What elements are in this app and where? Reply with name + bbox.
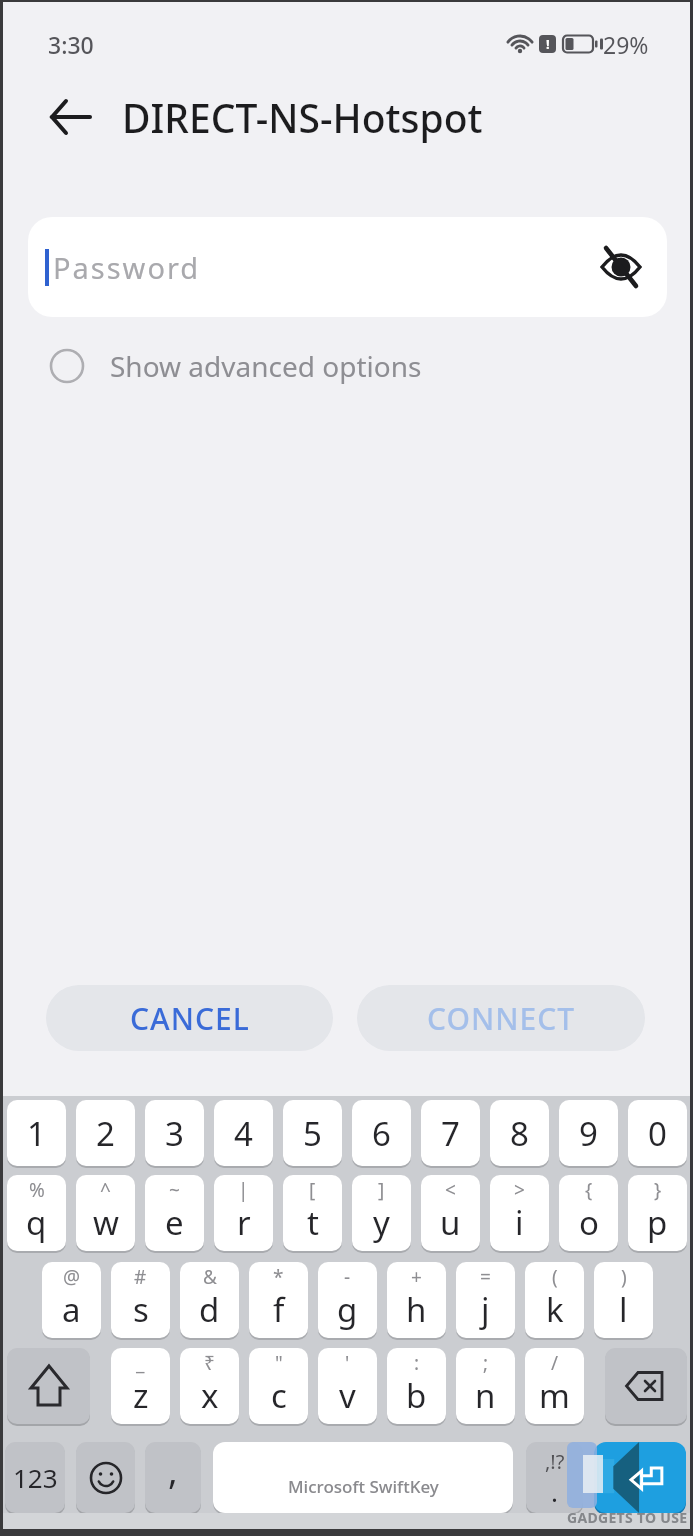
button[interactable]: ₹ — [180, 1348, 239, 1424]
staticText: Password — [53, 248, 201, 287]
staticText: z — [133, 1373, 149, 1418]
staticText: ^ — [100, 1177, 111, 1203]
button[interactable]: 5 — [283, 1100, 342, 1166]
staticText: s — [133, 1287, 149, 1332]
button[interactable]: } — [628, 1175, 687, 1251]
staticText: Show advanced options — [110, 347, 422, 385]
button[interactable]: 8 — [490, 1100, 549, 1166]
button[interactable]: Microsoft SwiftKey — [213, 1442, 513, 1513]
button[interactable]: / — [525, 1348, 584, 1424]
staticText: " — [275, 1350, 283, 1376]
staticText: + — [411, 1264, 422, 1290]
staticText: ₹ — [204, 1350, 215, 1376]
button[interactable]: CANCEL — [46, 985, 333, 1051]
staticText: @ — [63, 1264, 81, 1290]
button[interactable] — [594, 1442, 686, 1513]
button[interactable]: # — [111, 1262, 170, 1338]
staticText: q — [26, 1200, 47, 1245]
staticText: x — [201, 1373, 219, 1418]
button[interactable]: 0 — [628, 1100, 687, 1166]
button[interactable]: 7 — [421, 1100, 480, 1166]
staticText: a — [62, 1287, 81, 1332]
button[interactable] — [48, 95, 92, 139]
button[interactable]: _ — [111, 1348, 170, 1424]
staticText: i — [515, 1200, 524, 1245]
staticText: 8 — [510, 1111, 529, 1156]
staticText: m — [539, 1373, 570, 1418]
button[interactable]: = — [456, 1262, 515, 1338]
button[interactable] — [605, 1348, 687, 1424]
staticText: ] — [378, 1177, 385, 1203]
staticText: ( — [552, 1264, 558, 1290]
button[interactable]: 9 — [559, 1100, 618, 1166]
button[interactable]: ,!? — [526, 1442, 583, 1513]
button[interactable]: " — [249, 1348, 308, 1424]
button[interactable]: { — [559, 1175, 618, 1251]
staticText: ~ — [169, 1177, 180, 1203]
button[interactable]: , — [145, 1442, 201, 1513]
staticText: 0 — [648, 1111, 667, 1156]
button[interactable]: | — [214, 1175, 273, 1251]
button[interactable]: ~ — [145, 1175, 204, 1251]
staticText: [ — [309, 1177, 316, 1203]
button[interactable]: Password — [28, 217, 667, 317]
button[interactable]: 2 — [76, 1100, 135, 1166]
staticText: 3:30 — [48, 29, 94, 60]
button[interactable]: < — [421, 1175, 480, 1251]
button[interactable]: ; — [456, 1348, 515, 1424]
staticText: - — [344, 1264, 351, 1290]
button[interactable]: % — [7, 1175, 66, 1251]
staticText: u — [440, 1200, 461, 1245]
staticText: ! — [546, 35, 550, 53]
button[interactable]: 1 — [7, 1100, 66, 1166]
staticText: k — [546, 1287, 564, 1332]
staticText: / — [551, 1350, 559, 1376]
staticText: 7 — [441, 1111, 460, 1156]
button[interactable]: @ — [42, 1262, 101, 1338]
button[interactable]: [ — [283, 1175, 342, 1251]
button[interactable]: CONNECT — [357, 985, 645, 1051]
staticText: 5 — [303, 1111, 322, 1156]
button[interactable]: 6 — [352, 1100, 411, 1166]
button[interactable]: * — [249, 1262, 308, 1338]
button[interactable]: ' — [318, 1348, 377, 1424]
staticText: 29% — [603, 29, 649, 60]
staticText: CONNECT — [427, 998, 576, 1039]
staticText: DIRECT-NS-Hotspot — [122, 91, 483, 144]
staticText: . — [551, 1474, 558, 1509]
button[interactable]: ) — [594, 1262, 653, 1338]
button[interactable] — [76, 1442, 135, 1513]
button[interactable]: ( — [525, 1262, 584, 1338]
staticText: ; — [483, 1350, 489, 1376]
button[interactable]: 3 — [145, 1100, 204, 1166]
staticText: f — [273, 1287, 285, 1332]
staticText: 2 — [96, 1111, 115, 1156]
staticText: Microsoft SwiftKey — [288, 1475, 439, 1498]
button[interactable]: - — [318, 1262, 377, 1338]
button[interactable]: ] — [352, 1175, 411, 1251]
button[interactable]: Show advanced options — [49, 346, 422, 386]
staticText: p — [647, 1200, 668, 1245]
staticText: d — [199, 1287, 220, 1332]
staticText: ,!? — [545, 1448, 565, 1475]
staticText: # — [134, 1264, 147, 1290]
staticText: g — [337, 1287, 358, 1332]
staticText: * — [273, 1264, 284, 1290]
button[interactable]: 123 — [5, 1442, 65, 1513]
staticText: 9 — [579, 1111, 598, 1156]
staticText: 3 — [165, 1111, 184, 1156]
staticText: % — [29, 1177, 45, 1203]
button[interactable] — [7, 1348, 90, 1424]
staticText: n — [475, 1373, 496, 1418]
button[interactable]: & — [180, 1262, 239, 1338]
staticText: & — [203, 1264, 217, 1290]
staticText: 6 — [372, 1111, 391, 1156]
staticText: v — [339, 1373, 356, 1418]
button[interactable]: 4 — [214, 1100, 273, 1166]
staticText: t — [307, 1200, 319, 1245]
button[interactable]: : — [387, 1348, 446, 1424]
button[interactable]: > — [490, 1175, 549, 1251]
button[interactable]: + — [387, 1262, 446, 1338]
button[interactable]: ^ — [76, 1175, 135, 1251]
staticText: 4 — [234, 1111, 253, 1156]
